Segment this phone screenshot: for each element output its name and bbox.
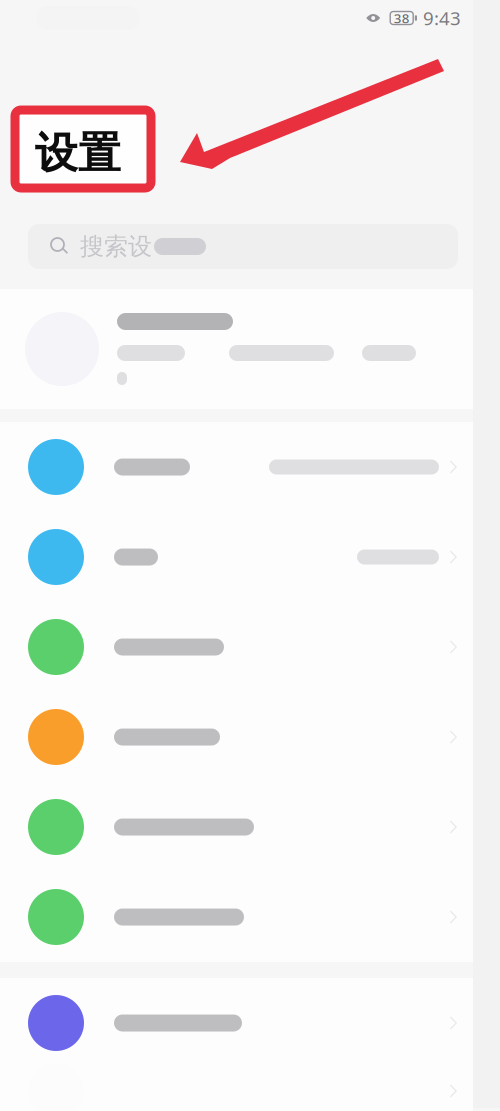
button[interactable]: Settings row xyxy=(0,782,473,872)
button[interactable]: Apple ID, iCloud, Media & Purchases xyxy=(0,289,473,409)
button[interactable]: Settings row xyxy=(0,872,473,962)
staticText: 搜索设 xyxy=(80,232,152,261)
staticText: 38 xyxy=(394,9,410,27)
staticText: 设置 xyxy=(35,127,121,179)
button[interactable]: Settings row xyxy=(0,978,473,1068)
button[interactable]: Settings row xyxy=(0,512,473,602)
button[interactable]: Settings row xyxy=(0,422,473,512)
button[interactable]: Settings row xyxy=(0,602,473,692)
staticText: 9:43 xyxy=(423,6,461,30)
button[interactable]: Settings row xyxy=(0,692,473,782)
button[interactable]: Search Settings xyxy=(0,224,473,269)
